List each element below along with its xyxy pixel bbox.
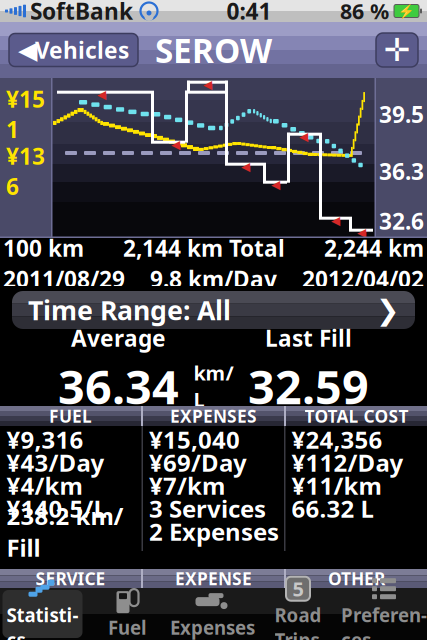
staticText: ◀ (299, 130, 308, 143)
staticText: 5 (292, 575, 303, 602)
staticText: ◀ (241, 160, 250, 173)
staticText: EXPENSES (170, 404, 257, 427)
staticText: 238.2 km/Fill (6, 500, 123, 563)
staticText: 0:41 (226, 0, 271, 26)
staticText: 36.34 (58, 355, 179, 417)
staticText: Last Fill (265, 323, 352, 353)
staticText: TOTAL COST (304, 404, 408, 427)
button[interactable]: Statistics (2, 590, 82, 638)
button[interactable]: ◀ (9, 33, 138, 66)
staticText: 86 % (340, 0, 389, 25)
staticText: 2011/08/29 (3, 264, 125, 294)
button[interactable]: Time Range: All (12, 291, 415, 329)
staticText: ¥69/Day (149, 447, 247, 478)
button[interactable]: 5 (255, 590, 341, 638)
staticText: 2 Expenses (149, 516, 279, 547)
staticText: 66.32 L (291, 493, 373, 524)
staticText: Average (71, 323, 166, 353)
staticText: km/L (193, 359, 233, 413)
staticText: 32.59 (248, 355, 369, 417)
staticText: SERVICE (35, 567, 105, 590)
staticText: ¥151 (6, 84, 45, 144)
staticText: ¥136 (6, 141, 45, 201)
staticText: Preferences (341, 603, 427, 640)
staticText: 36.3 (379, 156, 424, 186)
button[interactable]: ✛ (376, 33, 418, 67)
staticText: ◀ (271, 178, 280, 191)
staticText: ⚡ (398, 3, 415, 19)
staticText: 2,144 km Total (123, 233, 285, 263)
button[interactable]: Expenses (170, 590, 255, 638)
staticText: ❯ (376, 294, 399, 326)
staticText: 2,244 km (324, 233, 424, 263)
staticText: ◀ (171, 138, 180, 151)
staticText: ¥11/km (291, 470, 381, 501)
staticText: ◀ (203, 78, 212, 91)
staticText: ¥140.5/L (6, 493, 106, 524)
staticText: ¥43/Day (6, 447, 104, 478)
staticText: Fuel (108, 615, 147, 640)
staticText: EXPENSE (175, 567, 252, 590)
staticText: Statistics (6, 603, 78, 640)
staticText: SoftBank (30, 0, 133, 26)
staticText: FUEL (49, 404, 92, 427)
staticText: ◀ (331, 214, 340, 227)
staticText: ¥24,356 (291, 424, 382, 455)
staticText: Vehicles (35, 35, 129, 65)
staticText: 100 km (3, 233, 84, 263)
staticText: Expenses (170, 615, 255, 640)
staticText: ✛ (383, 32, 410, 68)
staticText: ¥112/Day (291, 447, 403, 478)
staticText: Road Trips (274, 603, 321, 640)
staticText: 39.5 (379, 99, 424, 129)
staticText: ¥4/km (6, 470, 82, 501)
staticText: ¥15,040 (149, 424, 240, 455)
staticText: ¥9,316 (6, 424, 83, 455)
staticText: OTHER (328, 567, 385, 590)
staticText: ¥7/km (149, 470, 225, 501)
staticText: ◀ (18, 36, 37, 64)
staticText: ◀ (357, 226, 366, 239)
staticText: 32.6 (379, 206, 424, 236)
staticText: ◀ (97, 88, 106, 101)
staticText: SEROW (155, 28, 272, 72)
staticText: Time Range: All (28, 292, 231, 328)
staticText: 2012/04/02 (302, 264, 424, 294)
staticText: 3 Services (149, 493, 266, 524)
staticText: 9.8 km/Day (150, 264, 277, 294)
button[interactable]: Preferences (341, 590, 427, 638)
button[interactable]: Fuel (85, 590, 170, 638)
